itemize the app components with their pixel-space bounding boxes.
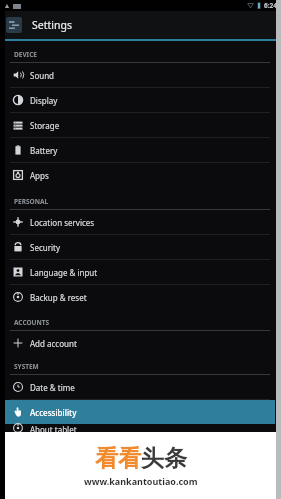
- button[interactable]: Location services: [0, 210, 281, 234]
- button[interactable]: Display: [0, 88, 281, 112]
- button[interactable]: Backup & reset: [0, 285, 281, 309]
- staticText: Battery: [30, 145, 58, 156]
- button[interactable]: Sound: [0, 63, 281, 87]
- staticText: ACCOUNTS: [14, 318, 50, 327]
- staticText: PERSONAL: [14, 197, 49, 206]
- other: Settings app icon: [6, 17, 22, 33]
- staticText: Accessibility: [30, 407, 77, 418]
- button[interactable]: Settings app icon: [0, 11, 281, 39]
- staticText: Settings: [32, 18, 72, 32]
- button[interactable]: Apps: [0, 163, 281, 187]
- staticText: Backup & reset: [30, 292, 87, 303]
- button[interactable]: Add account: [0, 331, 281, 355]
- button[interactable]: Date & time: [0, 375, 281, 399]
- staticText: Apps: [30, 170, 49, 181]
- staticText: Display: [30, 95, 58, 106]
- staticText: 头条: [141, 444, 187, 473]
- staticText: SYSTEM: [14, 362, 39, 371]
- button[interactable]: Storage: [0, 113, 281, 137]
- staticText: DEVICE: [14, 50, 37, 59]
- staticText: Date & time: [30, 382, 75, 393]
- staticText: Location services: [30, 217, 95, 228]
- staticText: Security: [30, 242, 61, 253]
- staticText: Sound: [30, 70, 55, 81]
- staticText: Language & input: [30, 267, 98, 278]
- staticText: Add account: [30, 338, 77, 349]
- button[interactable]: Language & input: [0, 260, 281, 284]
- staticText: About tablet: [30, 424, 77, 432]
- button[interactable]: Accessibility: [5, 400, 275, 424]
- staticText: 看看: [95, 444, 141, 473]
- button[interactable]: About tablet: [0, 424, 281, 432]
- staticText: 6:24: [264, 1, 277, 10]
- staticText: Storage: [30, 120, 60, 131]
- staticText: www.kankantoutiao.com: [84, 475, 198, 487]
- button[interactable]: Battery: [0, 138, 281, 162]
- button[interactable]: Security: [0, 235, 281, 259]
